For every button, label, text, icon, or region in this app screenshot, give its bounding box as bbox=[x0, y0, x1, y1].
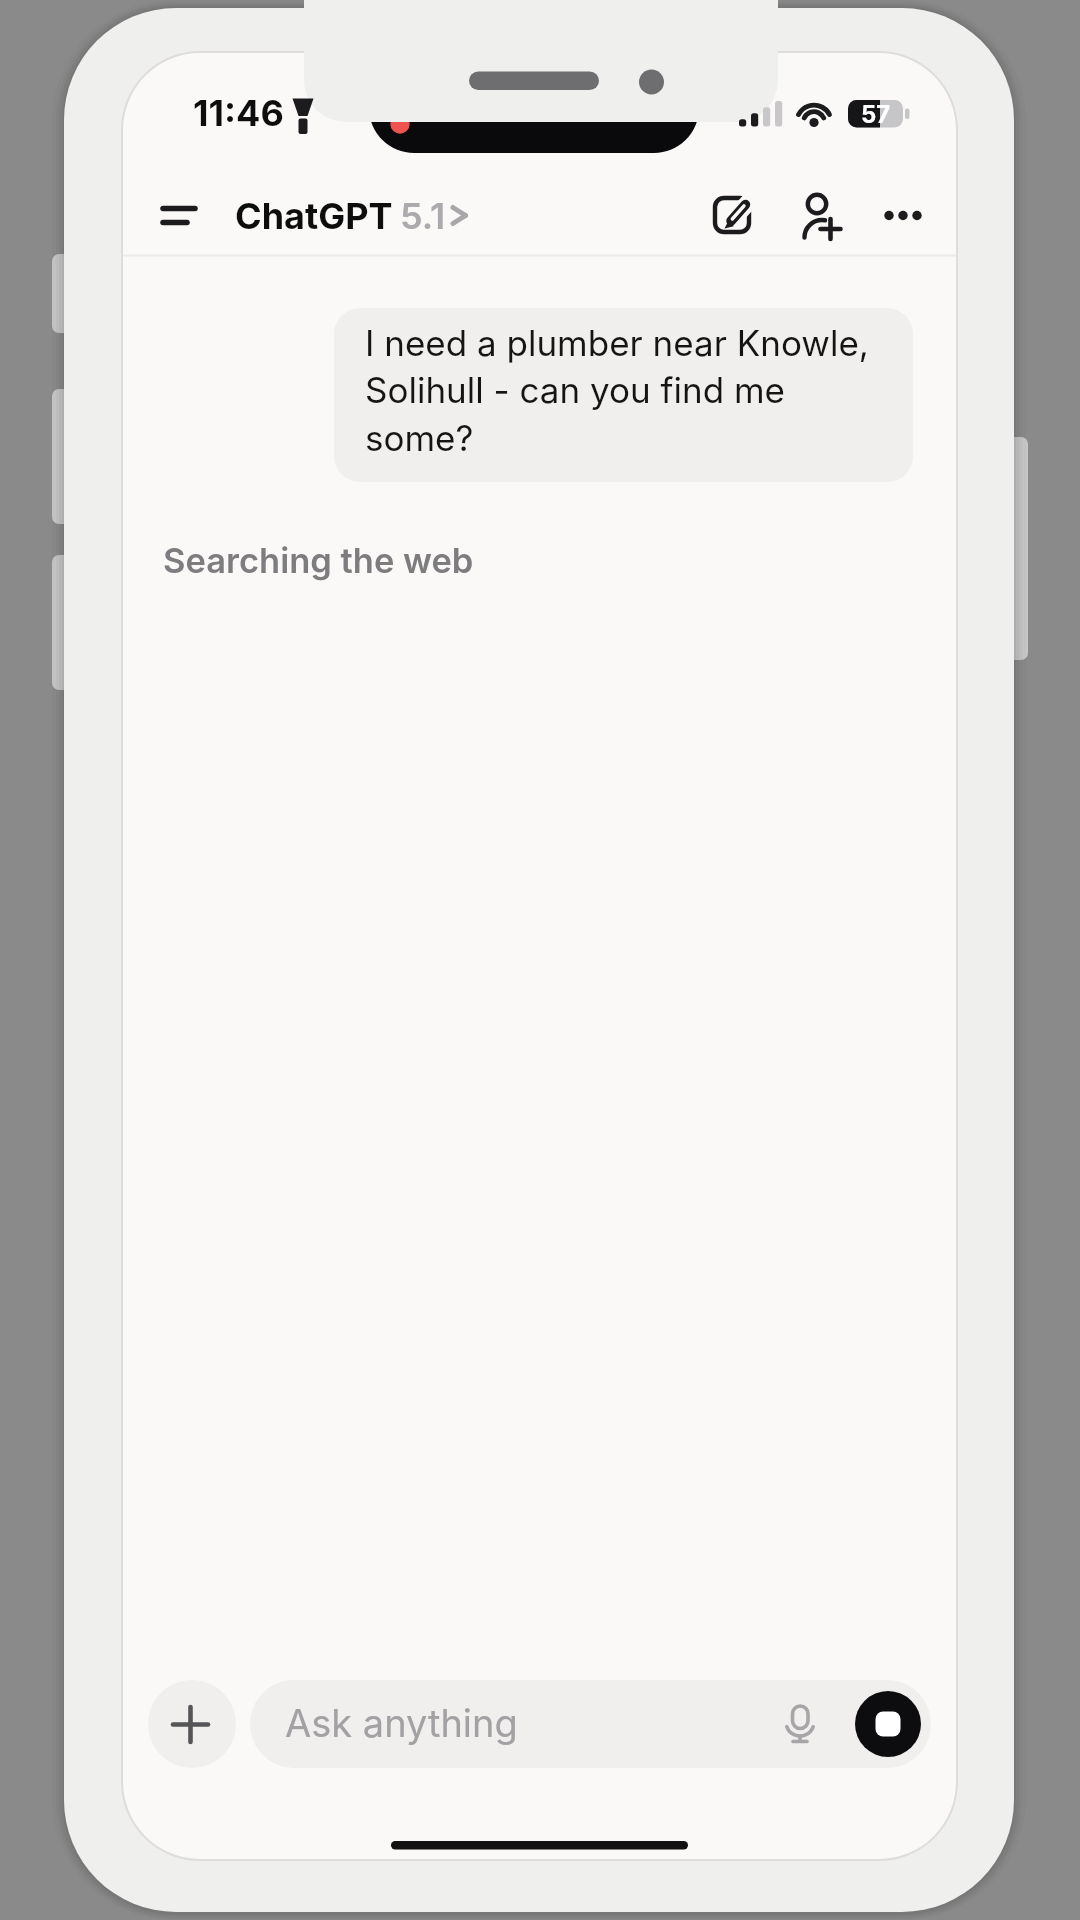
button[interactable] bbox=[772, 1694, 828, 1754]
button[interactable] bbox=[874, 186, 932, 246]
button[interactable] bbox=[232, 190, 470, 240]
button[interactable] bbox=[250, 1680, 931, 1768]
staticText: 5.1 bbox=[400, 194, 446, 238]
button[interactable] bbox=[150, 190, 206, 240]
staticText: I need a plumber near Knowle, Solihull -… bbox=[365, 322, 869, 459]
staticText: ChatGPT bbox=[235, 194, 393, 238]
staticText: Searching the web bbox=[163, 540, 474, 582]
staticText: 57 bbox=[861, 100, 891, 128]
button[interactable] bbox=[855, 1691, 921, 1757]
button[interactable] bbox=[790, 186, 852, 246]
staticText: 11:46 bbox=[193, 91, 284, 135]
staticText: Ask anything bbox=[285, 1700, 518, 1746]
button[interactable] bbox=[148, 1680, 236, 1768]
button[interactable] bbox=[702, 186, 762, 246]
